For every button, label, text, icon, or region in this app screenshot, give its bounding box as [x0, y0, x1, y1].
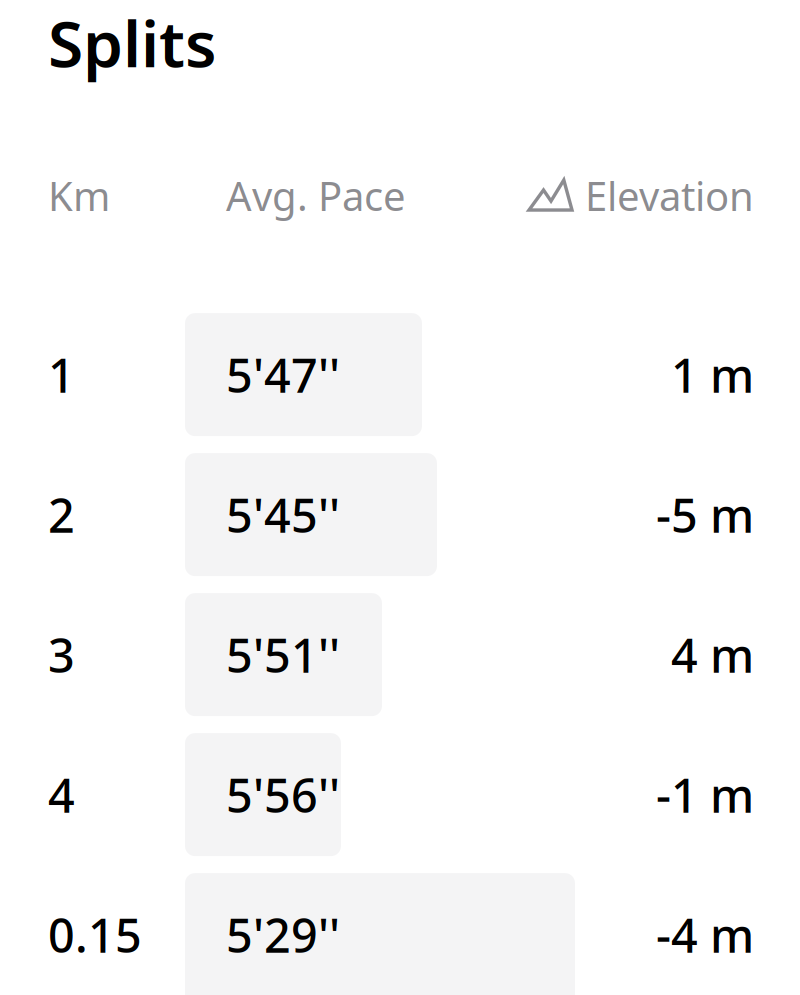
staticText: 5'56'': [226, 764, 340, 826]
button[interactable]: 1: [0, 313, 800, 436]
button[interactable]: 3: [0, 593, 800, 716]
staticText: -4 m: [656, 904, 754, 966]
staticText: 5'51'': [226, 624, 340, 686]
staticText: 1 m: [671, 344, 754, 406]
staticText: -1 m: [656, 764, 754, 826]
staticText: Avg. Pace: [226, 169, 406, 222]
button[interactable]: 2: [0, 453, 800, 576]
staticText: 5'29'': [226, 904, 340, 966]
staticText: 2: [48, 484, 75, 546]
staticText: Splits: [48, 0, 217, 85]
button[interactable]: 4: [0, 733, 800, 856]
staticText: 5'45'': [226, 484, 340, 546]
staticText: 1: [48, 344, 75, 406]
staticText: 3: [48, 624, 75, 686]
staticText: 0.15: [48, 904, 142, 966]
button[interactable]: 0.15: [0, 873, 800, 995]
staticText: -5 m: [656, 484, 754, 546]
staticText: 4: [48, 764, 75, 826]
staticText: 5'47'': [226, 344, 340, 406]
staticText: 4 m: [671, 624, 754, 686]
staticText: Elevation: [585, 169, 754, 222]
staticText: Km: [48, 169, 110, 222]
